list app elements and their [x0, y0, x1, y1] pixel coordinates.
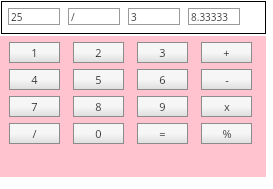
staticText: -: [225, 72, 229, 87]
staticText: 0: [95, 126, 102, 141]
staticText: 3: [131, 10, 137, 24]
button[interactable]: 3: [137, 42, 188, 63]
staticText: 5: [95, 72, 102, 87]
button[interactable]: -: [201, 69, 252, 90]
staticText: /: [71, 10, 75, 24]
button[interactable]: 8.33333: [188, 8, 240, 25]
staticText: 1: [31, 45, 38, 60]
button[interactable]: 5: [73, 69, 124, 90]
staticText: 8.33333: [191, 10, 228, 24]
staticText: +: [223, 45, 230, 60]
button[interactable]: 3: [128, 8, 180, 25]
button[interactable]: 25: [8, 8, 60, 25]
button[interactable]: 0: [73, 123, 124, 144]
staticText: %: [222, 126, 232, 141]
staticText: 2: [95, 45, 102, 60]
button[interactable]: %: [201, 123, 252, 144]
button[interactable]: 9: [137, 96, 188, 117]
staticText: x: [224, 99, 230, 114]
staticText: 3: [159, 45, 166, 60]
button[interactable]: 2: [73, 42, 124, 63]
staticText: 9: [159, 99, 166, 114]
staticText: 8: [95, 99, 102, 114]
staticText: 4: [31, 72, 38, 87]
button[interactable]: +: [201, 42, 252, 63]
button[interactable]: 8: [73, 96, 124, 117]
button[interactable]: /: [9, 123, 60, 144]
staticText: /: [32, 126, 37, 141]
button[interactable]: =: [137, 123, 188, 144]
button[interactable]: 4: [9, 69, 60, 90]
button[interactable]: x: [201, 96, 252, 117]
button[interactable]: 7: [9, 96, 60, 117]
staticText: 7: [31, 99, 38, 114]
staticText: 25: [11, 10, 23, 24]
button[interactable]: /: [68, 8, 120, 25]
staticText: =: [159, 126, 166, 141]
staticText: 6: [159, 72, 166, 87]
button[interactable]: 1: [9, 42, 60, 63]
button[interactable]: 6: [137, 69, 188, 90]
